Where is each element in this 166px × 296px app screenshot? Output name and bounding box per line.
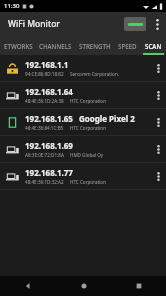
staticText: ETWORKS xyxy=(4,42,33,50)
button[interactable]: ETWORKS xyxy=(0,36,36,55)
staticText: 48:4E:36:1D:2A:38 xyxy=(25,98,64,104)
staticText: 192.168.1.69 xyxy=(25,140,73,151)
button[interactable]: SPEED xyxy=(114,36,141,55)
button[interactable]: Device options xyxy=(152,82,164,108)
button[interactable]: Device options xyxy=(152,163,164,189)
staticText: WiFi Monitor xyxy=(8,18,60,30)
staticText: 48:4E:36:84:1C:B5 xyxy=(25,125,64,131)
button[interactable]: 192.168.1.65 xyxy=(0,109,166,136)
button[interactable]: 192.168.1.77 xyxy=(0,163,166,190)
staticText: CHANNELS xyxy=(39,42,72,50)
staticText: 192.168.1.64 xyxy=(25,86,73,97)
button[interactable]: 192.168.1.1 xyxy=(0,55,166,82)
button[interactable]: Back xyxy=(0,276,56,296)
button[interactable]: Recents xyxy=(111,276,166,296)
staticText: HTC Corporation xyxy=(70,179,106,185)
button[interactable]: 192.168.1.64 xyxy=(0,82,166,109)
button[interactable]: More options xyxy=(150,14,164,34)
staticText: A8:3E:0E:72:D1:8A xyxy=(25,152,64,158)
button[interactable]: Device options xyxy=(152,109,164,135)
button[interactable]: Toggle scan xyxy=(124,17,146,31)
button[interactable]: SCAN xyxy=(141,36,166,55)
staticText: SPEED xyxy=(118,42,137,50)
button[interactable]: 192.168.1.69 xyxy=(0,136,166,163)
staticText: 192.168.1.1 xyxy=(25,59,69,70)
button[interactable]: STRENGTH xyxy=(75,36,114,55)
button[interactable]: Home xyxy=(56,276,111,296)
button[interactable]: Device options xyxy=(152,55,164,81)
staticText: 192.168.1.65 xyxy=(25,113,73,124)
button[interactable]: Device options xyxy=(152,136,164,162)
staticText: SCAN xyxy=(145,42,162,50)
staticText: 48:4E:36:1D:32:A2 xyxy=(25,179,64,185)
staticText: Sercomm Corporation. xyxy=(70,71,119,77)
staticText: HTC Corporation xyxy=(70,98,106,104)
staticText: HTC Corporation xyxy=(70,125,106,131)
button[interactable]: CHANNELS xyxy=(36,36,75,55)
staticText: Google Pixel 2 xyxy=(79,113,135,124)
staticText: 94:CE:86:9D:18:82 xyxy=(25,71,64,77)
staticText: HMD Global Oy xyxy=(70,152,104,158)
staticText: 192.168.1.77 xyxy=(25,167,73,178)
staticText: STRENGTH xyxy=(79,42,111,50)
staticText: 11:30 xyxy=(4,2,20,10)
